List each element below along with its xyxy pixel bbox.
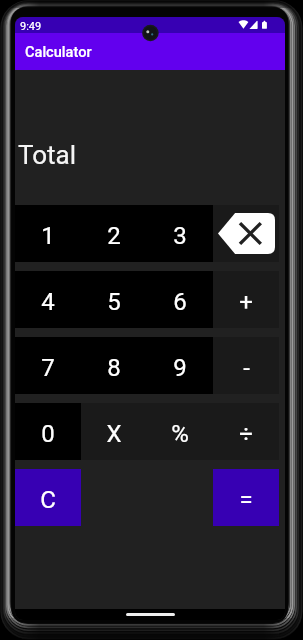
button[interactable]: ÷: [213, 403, 279, 460]
staticText: 7: [41, 354, 55, 382]
button[interactable]: Backspace: [213, 205, 279, 262]
staticText: C: [40, 486, 56, 514]
button[interactable]: 9: [147, 337, 213, 394]
button[interactable]: =: [213, 469, 279, 526]
staticText: X: [106, 420, 122, 448]
button[interactable]: 0: [15, 403, 81, 460]
staticText: 2: [107, 222, 121, 250]
button[interactable]: %: [147, 403, 213, 460]
staticText: =: [239, 486, 253, 514]
button[interactable]: +: [213, 271, 279, 328]
staticText: Total: [18, 140, 77, 170]
staticText: 1: [41, 222, 55, 250]
button[interactable]: X: [81, 403, 147, 460]
staticText: 0: [41, 420, 55, 448]
staticText: %: [171, 420, 189, 448]
staticText: 9: [173, 354, 187, 382]
staticText: 4: [41, 288, 55, 316]
button[interactable]: 8: [81, 337, 147, 394]
staticText: 3: [173, 222, 187, 250]
button[interactable]: 2: [81, 205, 147, 262]
staticText: 9:49: [20, 20, 42, 33]
button[interactable]: 7: [15, 337, 81, 394]
staticText: 5: [107, 288, 121, 316]
staticText: 6: [173, 288, 187, 316]
staticText: -: [243, 354, 250, 382]
staticText: +: [239, 288, 253, 316]
button[interactable]: 6: [147, 271, 213, 328]
button[interactable]: -: [213, 337, 279, 394]
button[interactable]: 1: [15, 205, 81, 262]
button[interactable]: C: [15, 469, 81, 526]
staticText: Calculator: [25, 43, 92, 60]
staticText: ÷: [239, 420, 253, 448]
button[interactable]: 5: [81, 271, 147, 328]
button[interactable]: 4: [15, 271, 81, 328]
button[interactable]: 3: [147, 205, 213, 262]
staticText: 8: [107, 354, 121, 382]
